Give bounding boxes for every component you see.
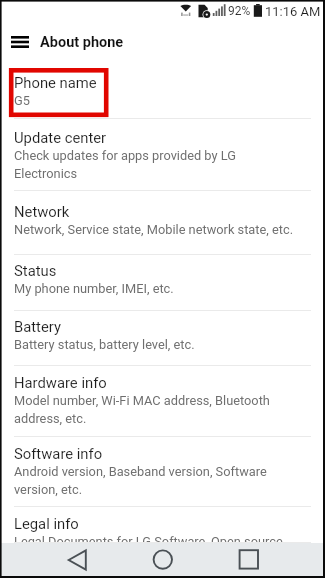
button[interactable]: Hardware info (0, 366, 325, 437)
staticText: Update center (14, 129, 107, 146)
button[interactable]: Software info (0, 437, 325, 507)
staticText: Phone name (14, 74, 97, 91)
staticText: Hardware info (14, 374, 107, 391)
staticText: Network, Service state, Mobile network s… (14, 220, 294, 238)
button[interactable]: Phone name (0, 62, 325, 119)
button[interactable]: Open navigation drawer (0, 22, 40, 62)
staticText: Status (14, 262, 57, 279)
staticText: Battery (14, 318, 61, 335)
staticText: Network (14, 203, 70, 220)
staticText: Battery status, battery level, etc. (14, 335, 195, 353)
button[interactable]: Network (0, 191, 325, 255)
staticText: Software info (14, 445, 103, 462)
staticText: Check updates for apps provided by LG El… (14, 146, 297, 182)
button[interactable]: Status (0, 255, 325, 311)
staticText: Legal info (14, 515, 79, 532)
staticText: My phone number, IMEI, etc. (14, 279, 174, 297)
button[interactable]: Battery (0, 311, 325, 366)
staticText: Android version, Baseband version, Softw… (14, 462, 297, 498)
staticText: Model number, Wi-Fi MAC address, Bluetoo… (14, 391, 297, 427)
staticText: 11:16 AM (265, 4, 321, 19)
button[interactable]: Recent apps (221, 543, 277, 576)
staticText: G5 (14, 91, 30, 109)
staticText: Legal Documents for LG Software, Open so… (14, 532, 297, 543)
staticText: About phone (40, 34, 124, 51)
button[interactable]: Back (49, 543, 105, 576)
button[interactable]: Update center (0, 119, 325, 191)
staticText: 92% (228, 4, 251, 18)
button[interactable]: Legal info (0, 507, 325, 543)
button[interactable]: Home (135, 543, 191, 576)
